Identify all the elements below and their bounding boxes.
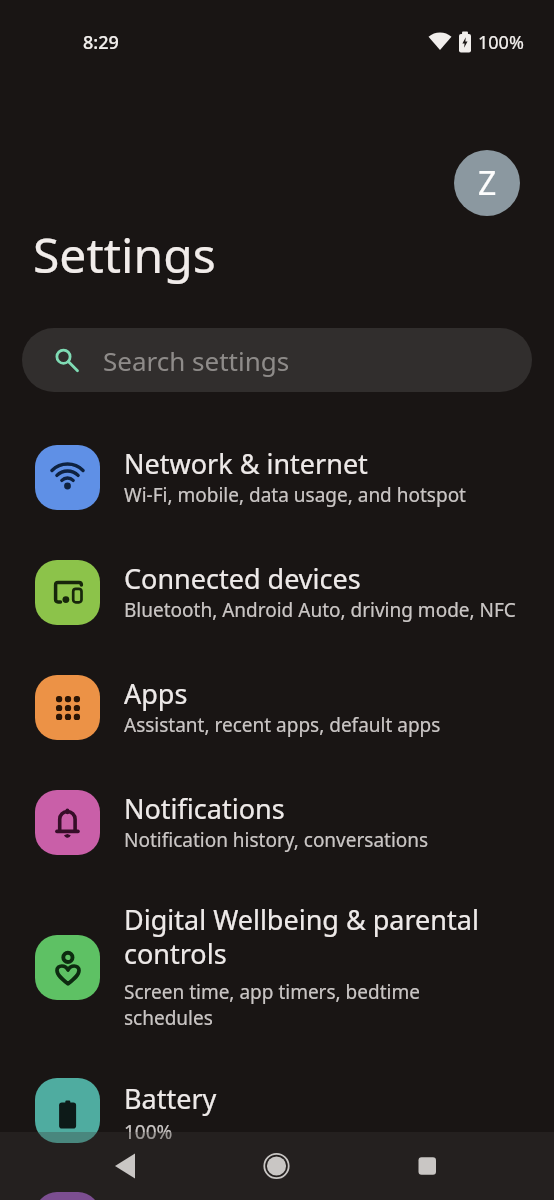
staticText: 8:29 — [83, 30, 119, 55]
staticText: Notification history, conversations — [124, 827, 429, 853]
staticText: 100% — [124, 1119, 173, 1145]
button[interactable]: Apps — [0, 670, 554, 785]
button[interactable] — [255, 1146, 299, 1186]
staticText: Digital Wellbeing & parental controls — [124, 901, 479, 972]
staticText: Notifications — [124, 790, 285, 827]
button[interactable] — [405, 1146, 449, 1186]
staticText: Screen time, app timers, bedtime schedul… — [124, 979, 420, 1030]
button[interactable]: Digital Wellbeing & parental controls — [0, 895, 554, 1040]
staticText: Wi-Fi, mobile, data usage, and hotspot — [124, 482, 466, 508]
button[interactable]: Battery — [0, 1073, 554, 1188]
staticText: 100% — [478, 30, 524, 55]
button[interactable]: Connected devices — [0, 555, 554, 670]
staticText: Z — [478, 161, 497, 205]
button[interactable] — [105, 1146, 149, 1186]
button[interactable]: Search settings — [22, 328, 532, 392]
staticText: Apps — [124, 675, 188, 712]
button[interactable]: Z — [454, 150, 520, 216]
staticText: Bluetooth, Android Auto, driving mode, N… — [124, 597, 516, 623]
button[interactable]: Network & internet — [0, 440, 554, 555]
staticText: Battery — [124, 1080, 217, 1117]
staticText: Connected devices — [124, 560, 361, 597]
staticText: Search settings — [103, 343, 290, 378]
staticText: Assistant, recent apps, default apps — [124, 712, 441, 738]
button[interactable]: Notifications — [0, 785, 554, 900]
staticText: Settings — [33, 222, 216, 287]
staticText: Network & internet — [124, 445, 368, 482]
